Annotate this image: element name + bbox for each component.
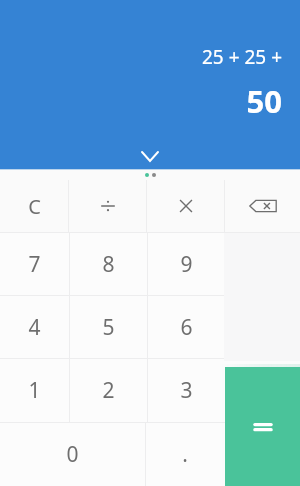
- staticText: 25 + 25 +: [201, 44, 282, 70]
- staticText: 5: [102, 313, 115, 342]
- staticText: 6: [180, 313, 193, 342]
- staticText: 0: [66, 440, 79, 469]
- staticText: .: [182, 440, 188, 469]
- button[interactable]: Divide: [69, 180, 146, 232]
- button[interactable]: Backspace: [225, 180, 300, 232]
- button[interactable]: Equals: [225, 367, 300, 486]
- button[interactable]: Clear: [0, 180, 68, 232]
- button[interactable]: Expand history: [127, 143, 173, 169]
- button[interactable]: 8: [70, 233, 147, 295]
- button[interactable]: 7: [0, 233, 69, 295]
- staticText: 50: [246, 80, 282, 122]
- button[interactable]: 4: [0, 296, 69, 358]
- button[interactable]: Multiply: [147, 180, 224, 232]
- staticText: 4: [28, 313, 41, 342]
- button[interactable]: 6: [148, 296, 225, 358]
- button[interactable]: 2: [70, 359, 147, 422]
- button[interactable]: 0: [0, 423, 145, 486]
- staticText: 3: [180, 376, 193, 405]
- staticText: C: [28, 193, 41, 220]
- button[interactable]: 5: [70, 296, 147, 358]
- staticText: 8: [102, 250, 115, 279]
- staticText: 7: [28, 250, 41, 279]
- button[interactable]: 9: [148, 233, 225, 295]
- staticText: 9: [180, 250, 193, 279]
- staticText: 2: [102, 376, 115, 405]
- button[interactable]: 1: [0, 359, 69, 422]
- button[interactable]: .: [146, 423, 224, 486]
- staticText: 1: [28, 376, 41, 405]
- button[interactable]: 3: [148, 359, 225, 422]
